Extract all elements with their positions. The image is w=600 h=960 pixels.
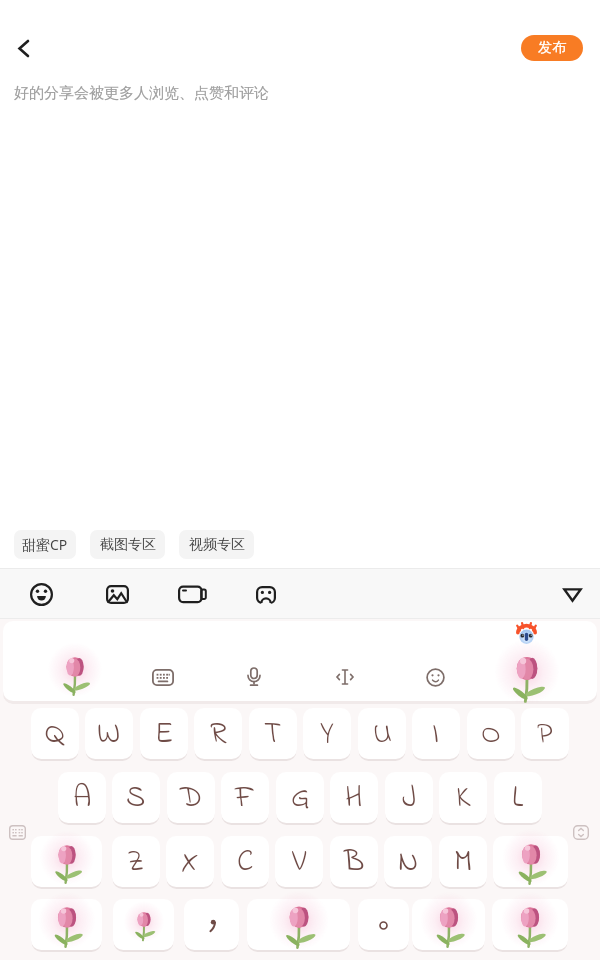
staticText: N — [398, 841, 419, 885]
staticText: G — [291, 777, 310, 821]
button[interactable]: D — [167, 772, 215, 825]
button[interactable]: R — [194, 708, 242, 761]
button[interactable] — [149, 663, 177, 691]
staticText: I — [432, 713, 440, 757]
staticText: Z — [127, 841, 145, 885]
staticText: X — [181, 841, 199, 885]
staticText: J — [402, 777, 417, 821]
button[interactable]: Y — [303, 708, 351, 761]
button[interactable]: O — [467, 708, 515, 761]
button[interactable] — [240, 663, 268, 691]
button[interactable] — [493, 836, 568, 889]
button[interactable]: 视频专区 — [179, 530, 254, 559]
button[interactable]: E — [140, 708, 188, 761]
staticText: A — [73, 777, 92, 821]
button[interactable] — [178, 582, 204, 607]
staticText: P — [537, 713, 553, 757]
button[interactable]: N — [384, 836, 432, 889]
button[interactable]: S — [112, 772, 160, 825]
button[interactable] — [492, 899, 568, 952]
staticText: U — [373, 713, 392, 757]
button[interactable] — [503, 652, 551, 704]
staticText: E — [155, 713, 174, 757]
button[interactable] — [31, 899, 102, 952]
button[interactable]: C — [221, 836, 269, 889]
staticText: K — [456, 777, 471, 821]
button[interactable]: B — [330, 836, 378, 889]
staticText: M — [454, 841, 473, 885]
staticText: 截图专区 — [100, 536, 156, 554]
button[interactable]: 甜蜜CP — [14, 530, 76, 559]
button[interactable] — [184, 899, 239, 952]
button[interactable]: X — [166, 836, 214, 889]
button[interactable]: Q — [31, 708, 79, 761]
staticText: B — [344, 841, 365, 885]
button[interactable] — [331, 663, 359, 691]
staticText: 好的分享会被更多人浏览、点赞和评论 — [14, 84, 269, 103]
staticText: 视频专区 — [189, 536, 245, 554]
button[interactable] — [8, 33, 38, 63]
staticText: 甜蜜CP — [22, 535, 68, 554]
button[interactable]: L — [494, 772, 542, 825]
staticText: O — [481, 713, 501, 757]
button[interactable] — [559, 582, 585, 607]
button[interactable] — [421, 663, 449, 691]
staticText: T — [264, 713, 282, 757]
staticText: S — [126, 777, 146, 821]
staticText: V — [292, 841, 307, 885]
button[interactable] — [358, 899, 409, 952]
staticText: D — [180, 777, 203, 821]
staticText: Q — [45, 713, 65, 757]
button[interactable]: I — [412, 708, 460, 761]
button[interactable]: W — [85, 708, 133, 761]
button[interactable]: U — [358, 708, 406, 761]
button[interactable]: M — [439, 836, 487, 889]
button[interactable] — [104, 582, 130, 607]
button[interactable]: A — [58, 772, 106, 825]
staticText: 发布 — [538, 39, 566, 57]
staticText: F — [235, 777, 255, 821]
button[interactable]: K — [439, 772, 487, 825]
button[interactable]: J — [385, 772, 433, 825]
button[interactable] — [31, 836, 102, 889]
button[interactable] — [113, 899, 174, 952]
staticText: W — [97, 713, 121, 757]
staticText: H — [345, 777, 363, 821]
button[interactable]: 发布 — [521, 35, 583, 61]
button[interactable]: F — [221, 772, 269, 825]
button[interactable]: Z — [112, 836, 160, 889]
button[interactable]: 截图专区 — [90, 530, 165, 559]
staticText: Y — [320, 713, 334, 757]
button[interactable]: V — [275, 836, 323, 889]
button[interactable] — [253, 582, 279, 607]
staticText: C — [237, 841, 254, 885]
button[interactable] — [55, 653, 95, 697]
staticText: L — [512, 777, 524, 821]
staticText: R — [210, 713, 227, 757]
button[interactable]: H — [330, 772, 378, 825]
button[interactable]: T — [249, 708, 297, 761]
button[interactable] — [247, 899, 350, 952]
button[interactable] — [28, 582, 54, 607]
button[interactable] — [412, 899, 485, 952]
button[interactable]: G — [276, 772, 324, 825]
button[interactable]: P — [521, 708, 569, 761]
